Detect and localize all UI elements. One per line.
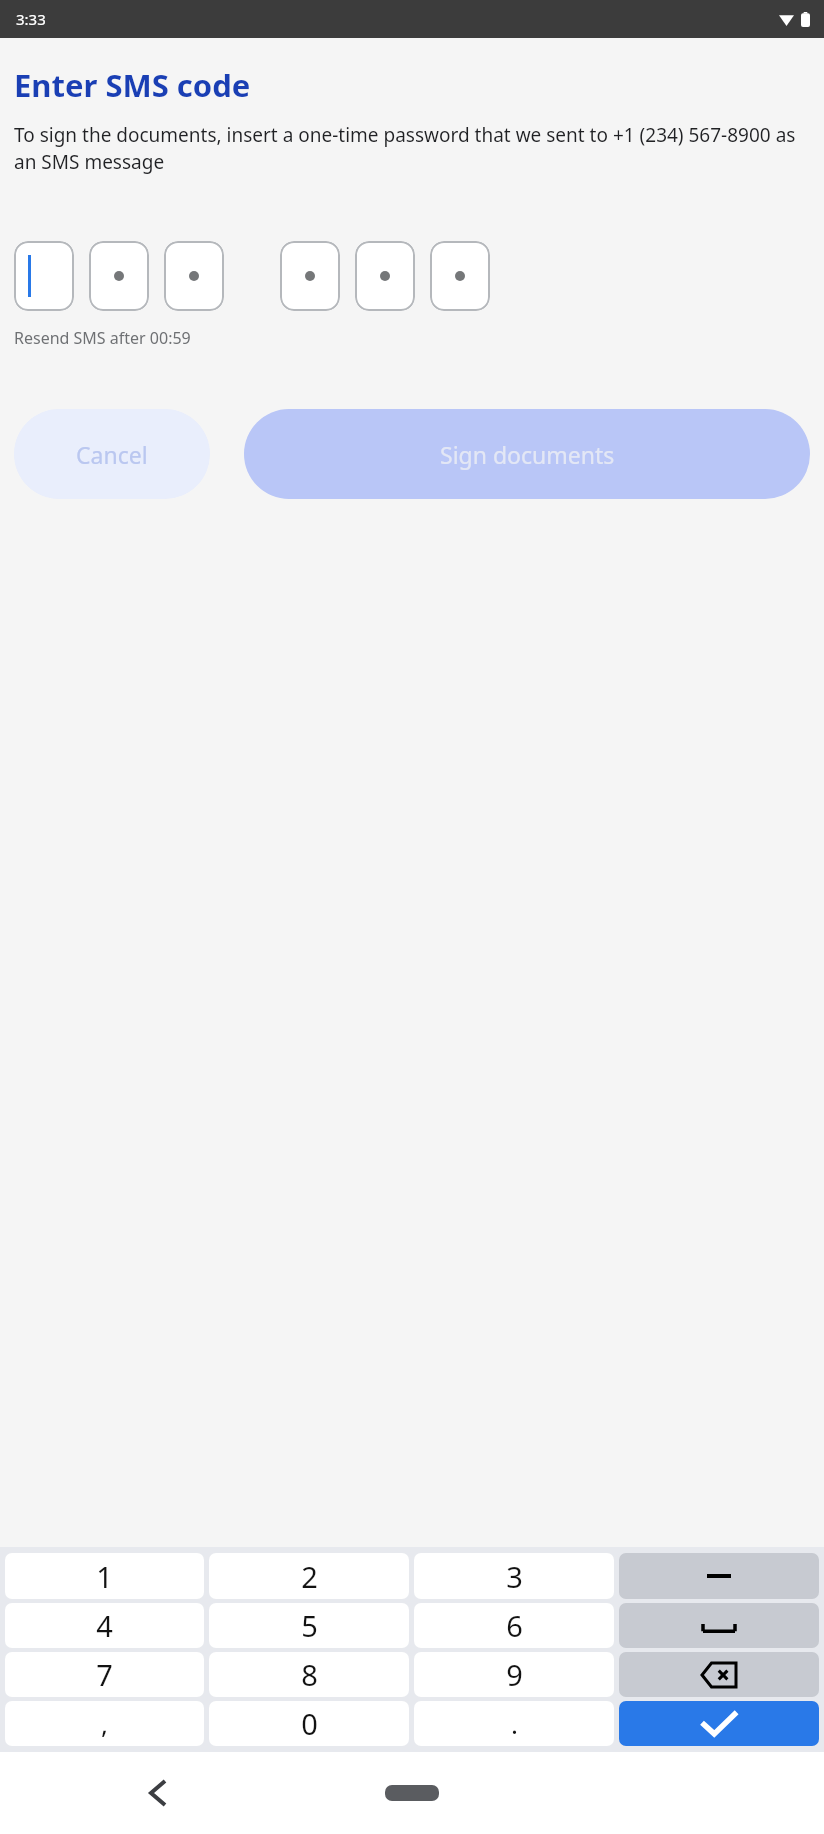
button[interactable]: 7 — [5, 1652, 204, 1697]
staticText: 7 — [96, 1655, 113, 1694]
button[interactable]: 3 — [414, 1553, 614, 1599]
button[interactable] — [89, 241, 149, 311]
staticText: Cancel — [76, 439, 148, 470]
button[interactable]: Enter — [619, 1701, 819, 1746]
staticText: 5 — [301, 1606, 318, 1645]
button[interactable]: Sign documents — [244, 409, 810, 499]
button[interactable]: , — [5, 1701, 204, 1746]
staticText: 9 — [506, 1655, 523, 1694]
staticText: Sign documents — [440, 439, 615, 470]
button[interactable] — [14, 241, 74, 311]
button[interactable]: Back — [130, 1765, 186, 1821]
staticText: Resend SMS after 00:59 — [14, 327, 191, 349]
staticText: . — [511, 1706, 518, 1741]
button[interactable]: 6 — [414, 1603, 614, 1648]
button[interactable]: 2 — [209, 1553, 409, 1599]
button[interactable]: 9 — [414, 1652, 614, 1697]
staticText: 4 — [96, 1606, 113, 1645]
button[interactable]: Space — [619, 1603, 819, 1648]
staticText: 6 — [506, 1606, 523, 1645]
staticText: Enter SMS code — [14, 64, 251, 106]
button[interactable] — [430, 241, 490, 311]
button[interactable]: 1 — [5, 1553, 204, 1599]
button[interactable]: Home — [385, 1785, 439, 1801]
button[interactable]: 4 — [5, 1603, 204, 1648]
staticText: 0 — [301, 1704, 318, 1743]
staticText: 3 — [506, 1557, 523, 1596]
button[interactable] — [164, 241, 224, 311]
staticText: , — [101, 1706, 108, 1741]
staticText: 3:33 — [16, 9, 46, 29]
button[interactable] — [280, 241, 340, 311]
staticText: 2 — [301, 1557, 318, 1596]
button[interactable]: 5 — [209, 1603, 409, 1648]
staticText: To sign the documents, insert a one-time… — [14, 122, 810, 175]
button[interactable]: Backspace — [619, 1652, 819, 1697]
button[interactable]: . — [414, 1701, 614, 1746]
button[interactable]: Dash — [619, 1553, 819, 1599]
staticText: 1 — [96, 1557, 113, 1596]
staticText: 8 — [301, 1655, 318, 1694]
button[interactable]: Cancel — [14, 409, 210, 499]
button[interactable] — [355, 241, 415, 311]
button[interactable]: 0 — [209, 1701, 409, 1746]
button[interactable]: 8 — [209, 1652, 409, 1697]
